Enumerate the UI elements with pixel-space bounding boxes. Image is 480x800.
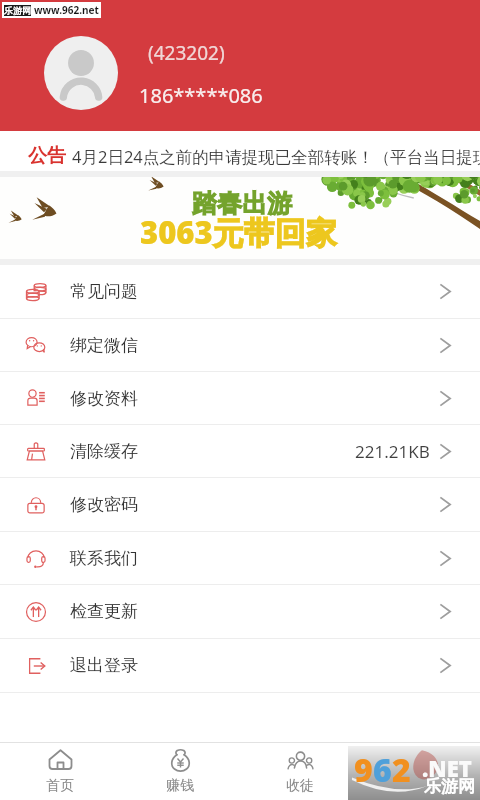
staticText: 踏春出游 (192, 188, 292, 219)
button[interactable]: 收徒 (240, 743, 360, 800)
button[interactable]: Avatar (44, 36, 118, 110)
button[interactable]: 退出登录 (0, 639, 480, 693)
staticText: 186*****086 (139, 82, 263, 109)
button[interactable]: 首页 (0, 743, 120, 800)
staticText: 联系我们 (70, 548, 138, 569)
staticText: www.962.net (34, 3, 99, 17)
staticText: 乐游网 (4, 5, 31, 16)
button[interactable]: 修改密码 (0, 478, 480, 532)
button[interactable]: 绑定微信 (0, 319, 480, 372)
staticText: 绑定微信 (70, 335, 138, 356)
staticText: 修改资料 (70, 388, 138, 409)
button[interactable]: 修改资料 (0, 372, 480, 425)
staticText: 9 (354, 748, 373, 792)
staticText: 221.21KB (355, 440, 430, 463)
button[interactable]: 赚钱 (120, 743, 240, 800)
staticText: 3063元带回家 (140, 211, 337, 253)
button[interactable]: 常见问题 (0, 265, 480, 319)
staticText: 修改密码 (70, 494, 138, 515)
staticText: 常见问题 (70, 281, 138, 302)
staticText: 2 (392, 748, 411, 792)
staticText: 收徒 (286, 777, 314, 795)
staticText: 检查更新 (70, 601, 138, 622)
button[interactable]: 清除缓存 (0, 425, 480, 478)
staticText: 6 (373, 748, 392, 792)
staticText: .NET (422, 753, 472, 783)
staticText: 乐游网 (424, 776, 475, 797)
button[interactable]: 检查更新 (0, 585, 480, 639)
staticText: 清除缓存 (70, 441, 138, 462)
staticText: 4月2日24点之前的申请提现已全部转账！（平台当日提现 (72, 145, 480, 168)
button[interactable]: 公告 (0, 131, 480, 171)
button[interactable]: 联系我们 (0, 532, 480, 585)
staticText: 赚钱 (166, 777, 194, 795)
button[interactable]: 踏春出游 (0, 177, 480, 259)
staticText: (423202) (148, 40, 225, 66)
staticText: 首页 (46, 777, 74, 795)
staticText: 公告 (28, 144, 66, 168)
staticText: 退出登录 (70, 655, 138, 676)
